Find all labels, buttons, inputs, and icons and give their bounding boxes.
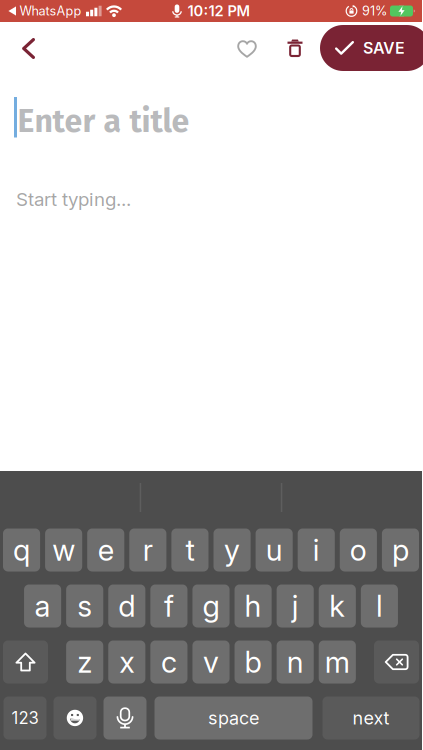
button[interactable]: Shift — [3, 640, 48, 683]
staticText: k — [329, 588, 345, 624]
staticText: w — [52, 532, 75, 568]
button[interactable]: Favorite — [237, 40, 257, 58]
staticText: Enter a title — [17, 102, 189, 140]
button[interactable]: k — [319, 584, 356, 627]
staticText: b — [245, 644, 262, 680]
staticText: 123 — [11, 708, 38, 728]
button[interactable]: q — [3, 528, 40, 571]
button[interactable]: x — [108, 640, 145, 683]
button[interactable]: s — [66, 584, 103, 627]
staticText: WhatsApp — [19, 3, 81, 19]
staticText: next — [352, 707, 389, 729]
staticText: p — [392, 532, 409, 568]
staticText: t — [185, 532, 194, 568]
staticText: o — [350, 532, 367, 568]
button[interactable]: m — [319, 640, 356, 683]
button[interactable]: e — [87, 528, 124, 571]
button[interactable]: h — [235, 584, 272, 627]
staticText: SAVE — [363, 38, 405, 58]
button[interactable]: d — [108, 584, 145, 627]
button[interactable]: Delete — [287, 38, 302, 57]
staticText: u — [266, 532, 283, 568]
staticText: a — [35, 588, 51, 624]
staticText: s — [77, 588, 92, 624]
button[interactable]: Dictation — [103, 696, 146, 739]
staticText: q — [13, 532, 30, 568]
staticText: l — [376, 588, 383, 624]
staticText: e — [98, 532, 114, 568]
staticText: j — [292, 588, 299, 624]
staticText: h — [245, 588, 262, 624]
staticText: r — [143, 532, 153, 568]
button[interactable]: o — [340, 528, 377, 571]
button[interactable]: Delete — [374, 640, 419, 683]
staticText: 10:12 PM — [187, 2, 250, 20]
button[interactable]: u — [256, 528, 293, 571]
staticText: z — [77, 644, 92, 680]
button[interactable]: space — [154, 696, 312, 739]
button[interactable]: p — [382, 528, 419, 571]
button[interactable]: a — [24, 584, 61, 627]
button[interactable]: r — [129, 528, 166, 571]
button[interactable]: y — [213, 528, 251, 571]
button[interactable]: n — [277, 640, 314, 683]
button[interactable]: Back — [22, 38, 35, 59]
staticText: space — [208, 707, 259, 729]
staticText: g — [202, 588, 219, 624]
button[interactable]: b — [235, 640, 272, 683]
staticText: x — [119, 644, 134, 680]
staticText: Start typing... — [16, 188, 131, 210]
button[interactable]: SAVE — [320, 25, 423, 71]
button[interactable]: g — [192, 584, 230, 627]
staticText: n — [287, 644, 304, 680]
button[interactable]: f — [150, 584, 187, 627]
button[interactable]: w — [45, 528, 82, 571]
button[interactable]: 123 — [3, 696, 46, 739]
staticText: d — [118, 588, 135, 624]
button[interactable]: z — [66, 640, 103, 683]
staticText: y — [224, 532, 240, 568]
staticText: c — [161, 644, 177, 680]
staticText: i — [313, 532, 320, 568]
staticText: 91% — [362, 3, 387, 19]
button[interactable]: t — [171, 528, 208, 571]
button[interactable]: Emoji — [53, 696, 96, 739]
button[interactable]: v — [192, 640, 230, 683]
staticText: v — [203, 644, 219, 680]
staticText: m — [325, 644, 350, 680]
button[interactable]: j — [277, 584, 314, 627]
button[interactable]: next — [322, 696, 419, 739]
button[interactable]: l — [361, 584, 398, 627]
staticText: f — [164, 588, 174, 624]
button[interactable]: c — [150, 640, 187, 683]
button[interactable]: i — [298, 528, 335, 571]
